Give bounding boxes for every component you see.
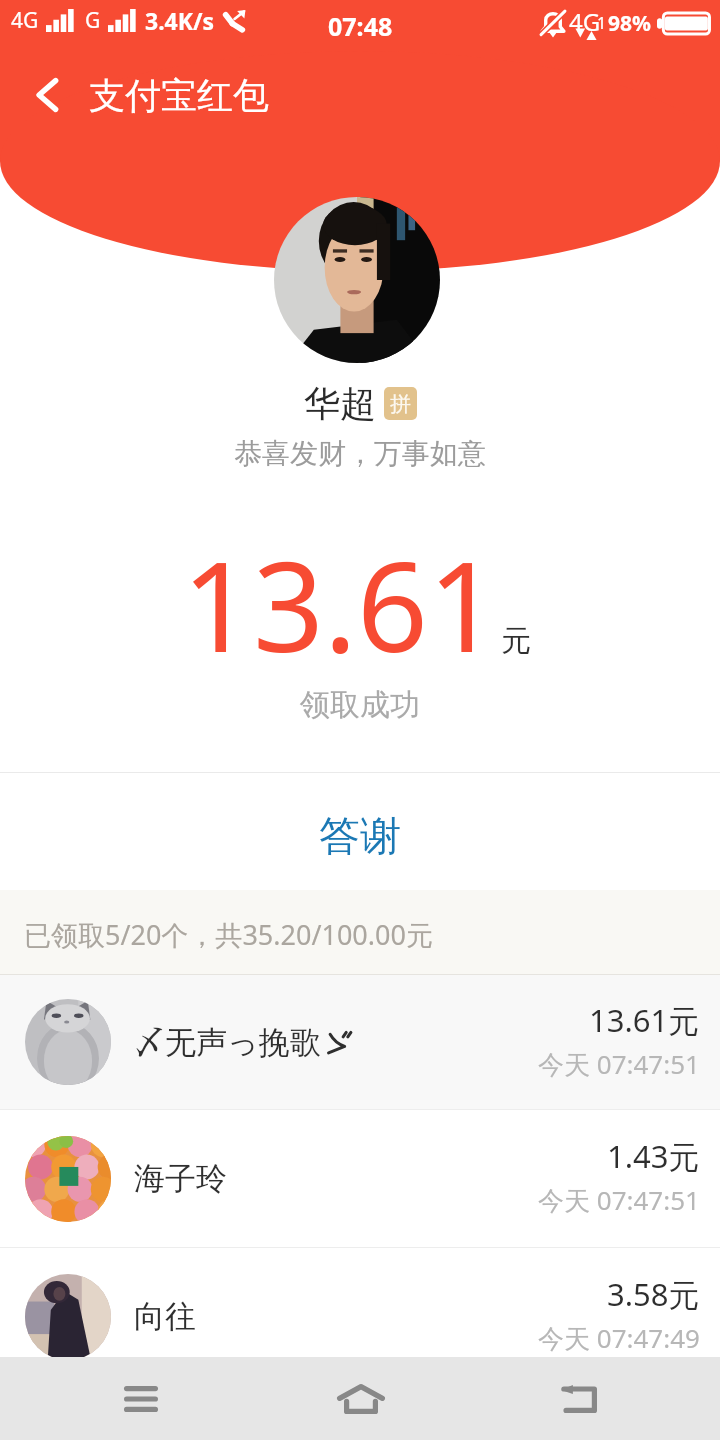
staticText: 3.4K/s <box>145 5 215 36</box>
staticText: 〆无声っ挽歌 <box>134 1023 321 1062</box>
button[interactable]: 向往 <box>0 1248 720 1385</box>
button[interactable]: 〆无声っ挽歌 <box>0 975 720 1109</box>
staticText: 今天 07:47:49 <box>538 1320 700 1356</box>
staticText: 1.43元 <box>607 1135 700 1177</box>
staticText: 98% <box>608 9 651 38</box>
button[interactable]: 海子玲 <box>0 1110 720 1247</box>
staticText: 4G <box>11 6 39 35</box>
staticText: 领取成功 <box>300 686 420 724</box>
staticText: 1 <box>597 12 607 34</box>
button[interactable]: Back <box>7 55 87 135</box>
staticText: 13.61元 <box>589 999 700 1041</box>
staticText: 海子玲 <box>134 1159 227 1198</box>
staticText: 恭喜发财，万事如意 <box>234 436 486 471</box>
staticText: 元 <box>501 622 531 660</box>
staticText: 向往 <box>134 1297 196 1336</box>
button[interactable]: Menu <box>60 1357 220 1440</box>
staticText: G <box>85 6 101 35</box>
staticText: 13.61 <box>182 519 499 688</box>
staticText: 已领取5/20个，共35.20/100.00元 <box>24 916 433 953</box>
button[interactable]: 答谢 <box>0 778 720 895</box>
staticText: 今天 07:47:51 <box>538 1182 700 1218</box>
button[interactable]: Back <box>499 1357 659 1440</box>
button[interactable]: Profile photo <box>274 197 440 363</box>
staticText: 支付宝红包 <box>89 73 269 118</box>
staticText: 拼 <box>390 391 411 417</box>
staticText: 3.58元 <box>607 1273 700 1315</box>
staticText: 华超 <box>304 381 376 426</box>
staticText: 07:48 <box>328 9 393 43</box>
staticText: 今天 07:47:51 <box>538 1046 700 1082</box>
staticText: 答谢 <box>319 811 401 863</box>
button[interactable]: Home <box>280 1357 440 1440</box>
staticText: 4G <box>569 5 601 38</box>
